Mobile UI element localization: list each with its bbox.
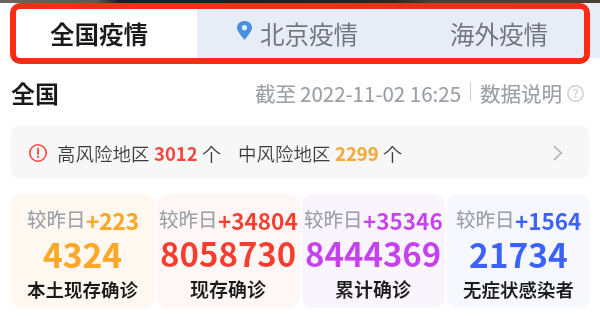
button[interactable]: 高风险地区 xyxy=(11,125,589,179)
button[interactable]: 较昨日 xyxy=(157,194,300,308)
staticText: 海外疫情 xyxy=(450,16,548,51)
staticText: 累计确诊 xyxy=(335,275,412,303)
staticText: 3012 xyxy=(154,140,198,167)
other: 查看风险地区 xyxy=(551,145,567,161)
staticText: 8058730 xyxy=(160,229,297,273)
staticText: ? xyxy=(573,85,579,102)
staticText: 中风险地区 xyxy=(238,140,335,167)
staticText: 全国疫情 xyxy=(50,16,148,51)
staticText: +34804 xyxy=(218,204,298,232)
staticText: 个 xyxy=(379,140,402,167)
staticText: +35346 xyxy=(363,204,443,232)
staticText: 4324 xyxy=(43,229,123,273)
staticText: +223 xyxy=(86,204,140,232)
staticText: 本土现存确诊 xyxy=(27,276,139,303)
staticText: 较昨日 xyxy=(456,204,515,232)
staticText: 8444369 xyxy=(305,229,442,273)
staticText: 北京疫情 xyxy=(260,16,358,51)
staticText: 个 xyxy=(198,140,221,167)
staticText: 全国 xyxy=(11,75,59,110)
button[interactable]: 较昨日 xyxy=(11,194,155,308)
staticText: 较昨日 xyxy=(304,204,363,232)
staticText: 2022-11-02 16:25 xyxy=(300,78,462,108)
staticText: 2299 xyxy=(335,140,379,167)
other: 数据说明 xyxy=(567,85,584,102)
button[interactable]: 海外疫情 xyxy=(398,3,600,58)
button[interactable]: 较昨日 xyxy=(447,194,590,308)
button[interactable]: 北京疫情 xyxy=(197,3,398,58)
staticText: +1564 xyxy=(515,204,582,232)
staticText: 21734 xyxy=(469,229,568,273)
staticText: 较昨日 xyxy=(27,204,86,232)
button[interactable]: 全国疫情 xyxy=(0,3,197,58)
staticText: 无症状感染者 xyxy=(463,276,575,303)
button[interactable]: 较昨日 xyxy=(302,194,445,308)
staticText: 较昨日 xyxy=(159,204,218,232)
staticText: 现存确诊 xyxy=(190,275,267,303)
staticText: 高风险地区 xyxy=(57,140,154,167)
button[interactable]: 数据说明 xyxy=(480,77,584,107)
staticText: 数据说明 xyxy=(480,78,562,108)
staticText: 截至 xyxy=(255,78,296,108)
